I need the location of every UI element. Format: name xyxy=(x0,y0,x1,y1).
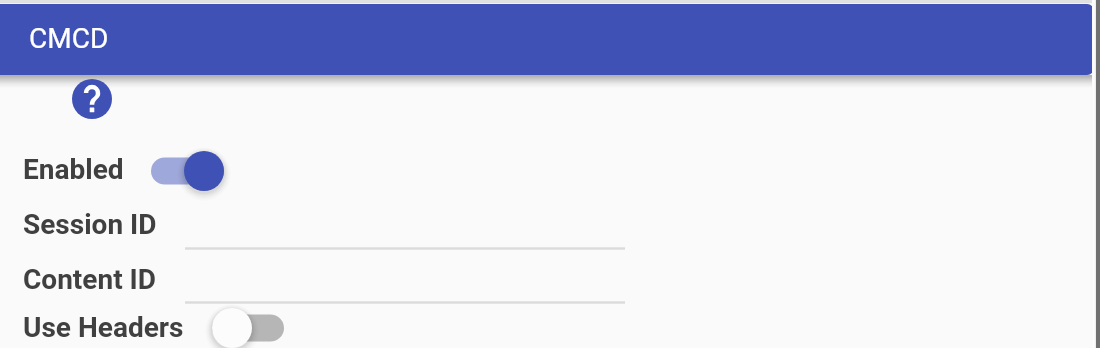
button[interactable]: Help xyxy=(72,79,112,119)
button[interactable]: Use headers, off xyxy=(212,304,288,348)
button[interactable]: CMCD xyxy=(0,4,1094,75)
button[interactable] xyxy=(14,147,227,195)
button[interactable]: Enabled, on xyxy=(151,147,227,195)
button[interactable] xyxy=(14,305,288,348)
staticText: CMCD xyxy=(29,22,109,55)
staticText: Use Headers xyxy=(23,311,184,344)
staticText: Enabled xyxy=(23,153,124,186)
staticText: Content ID xyxy=(23,263,156,296)
button[interactable]: Content ID text field xyxy=(14,257,625,305)
button[interactable]: Session ID text field xyxy=(14,203,625,251)
staticText: Session ID xyxy=(23,208,157,241)
